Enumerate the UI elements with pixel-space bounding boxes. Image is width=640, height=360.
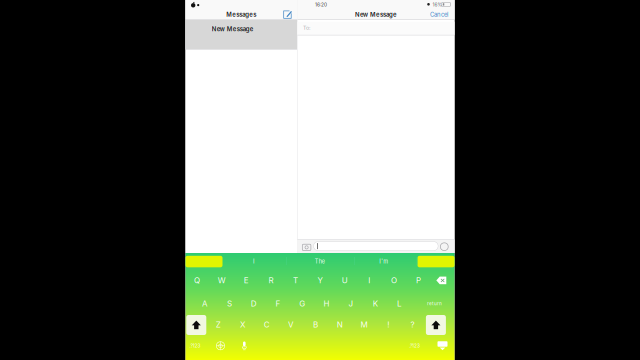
button[interactable]: Dictate xyxy=(238,338,250,354)
button[interactable]: .?123 xyxy=(185,338,205,354)
button[interactable]: Z xyxy=(208,315,229,334)
button[interactable]: U xyxy=(334,271,355,290)
button[interactable]: Next keyboard xyxy=(213,338,227,354)
button[interactable]: return xyxy=(420,294,448,313)
button[interactable]: R xyxy=(260,271,281,290)
button[interactable]: J xyxy=(340,294,361,313)
staticText: 16:20 xyxy=(315,2,327,8)
staticText: ? xyxy=(411,320,415,329)
staticText: Q xyxy=(194,276,200,285)
button[interactable]: Cancel xyxy=(428,9,450,20)
button[interactable]: Hide keyboard xyxy=(435,338,449,354)
button[interactable]: Delete xyxy=(430,271,452,289)
staticText: L xyxy=(397,299,402,308)
button[interactable]: Space xyxy=(255,338,405,354)
staticText: C xyxy=(264,320,270,329)
staticText: S xyxy=(227,299,232,308)
staticText: R xyxy=(268,276,273,285)
staticText: .?123 xyxy=(409,343,420,349)
staticText: X xyxy=(240,320,245,329)
staticText: I xyxy=(368,276,370,285)
staticText: T xyxy=(293,276,298,285)
staticText: G xyxy=(299,299,305,308)
staticText: W xyxy=(218,276,226,285)
staticText: New Message xyxy=(212,25,254,33)
button[interactable]: F xyxy=(267,294,288,313)
button[interactable]: L xyxy=(389,294,410,313)
staticText: I'm xyxy=(379,258,388,265)
staticText: .?123 xyxy=(189,343,200,349)
button[interactable]: K xyxy=(365,294,386,313)
staticText: Cancel xyxy=(430,11,448,18)
button[interactable]: G xyxy=(292,294,313,313)
button[interactable]: A xyxy=(195,294,216,313)
button[interactable]: The xyxy=(295,254,345,268)
staticText: To: xyxy=(303,25,311,31)
button[interactable]: P xyxy=(408,271,429,290)
staticText: Y xyxy=(318,276,323,285)
button[interactable]: Shift xyxy=(426,315,446,335)
staticText: A xyxy=(202,299,208,308)
staticText: J xyxy=(348,299,353,308)
button[interactable]: Y xyxy=(310,271,331,290)
button[interactable]: New Message xyxy=(185,20,297,49)
button[interactable]: .?123 xyxy=(404,338,424,354)
button[interactable]: M xyxy=(353,315,374,334)
button[interactable]: X xyxy=(232,315,253,334)
button[interactable]: Shift xyxy=(186,315,206,335)
staticText: N xyxy=(337,320,343,329)
staticText: O xyxy=(391,276,397,285)
staticText: E xyxy=(244,276,249,285)
staticText: M xyxy=(360,320,367,329)
button[interactable]: Camera xyxy=(301,243,312,252)
button[interactable]: E xyxy=(236,271,257,290)
staticText: U xyxy=(342,276,348,285)
button[interactable]: V xyxy=(281,315,302,334)
staticText: return xyxy=(427,301,442,306)
staticText: B xyxy=(313,320,318,329)
staticText: Z xyxy=(216,320,221,329)
button[interactable]: I xyxy=(229,254,279,268)
button[interactable]: B xyxy=(305,315,326,334)
staticText: Messages xyxy=(226,11,256,18)
button[interactable]: C xyxy=(256,315,277,334)
button[interactable]: Compose xyxy=(281,8,294,20)
staticText: F xyxy=(275,299,280,308)
staticText: The xyxy=(315,258,325,265)
button[interactable]: D xyxy=(243,294,264,313)
staticText: 16% xyxy=(432,2,442,8)
button[interactable]: H xyxy=(316,294,337,313)
button[interactable]: W xyxy=(211,271,232,290)
button[interactable]: ! xyxy=(378,315,399,334)
button[interactable]: T xyxy=(285,271,306,290)
staticText: D xyxy=(251,299,257,308)
staticText: I xyxy=(253,258,255,265)
button[interactable]: ? xyxy=(402,315,423,334)
button[interactable]: Q xyxy=(187,271,208,290)
button[interactable]: I xyxy=(359,271,380,290)
staticText: P xyxy=(416,276,421,285)
staticText: New Message xyxy=(355,11,397,18)
staticText: H xyxy=(324,299,330,308)
button[interactable]: O xyxy=(383,271,404,290)
button[interactable]: S xyxy=(219,294,240,313)
staticText: ! xyxy=(387,320,389,329)
button[interactable]: N xyxy=(329,315,350,334)
button[interactable]: Record audio xyxy=(439,242,449,252)
button[interactable]: I'm xyxy=(359,254,409,268)
staticText: K xyxy=(373,299,378,308)
staticText: V xyxy=(288,320,294,329)
